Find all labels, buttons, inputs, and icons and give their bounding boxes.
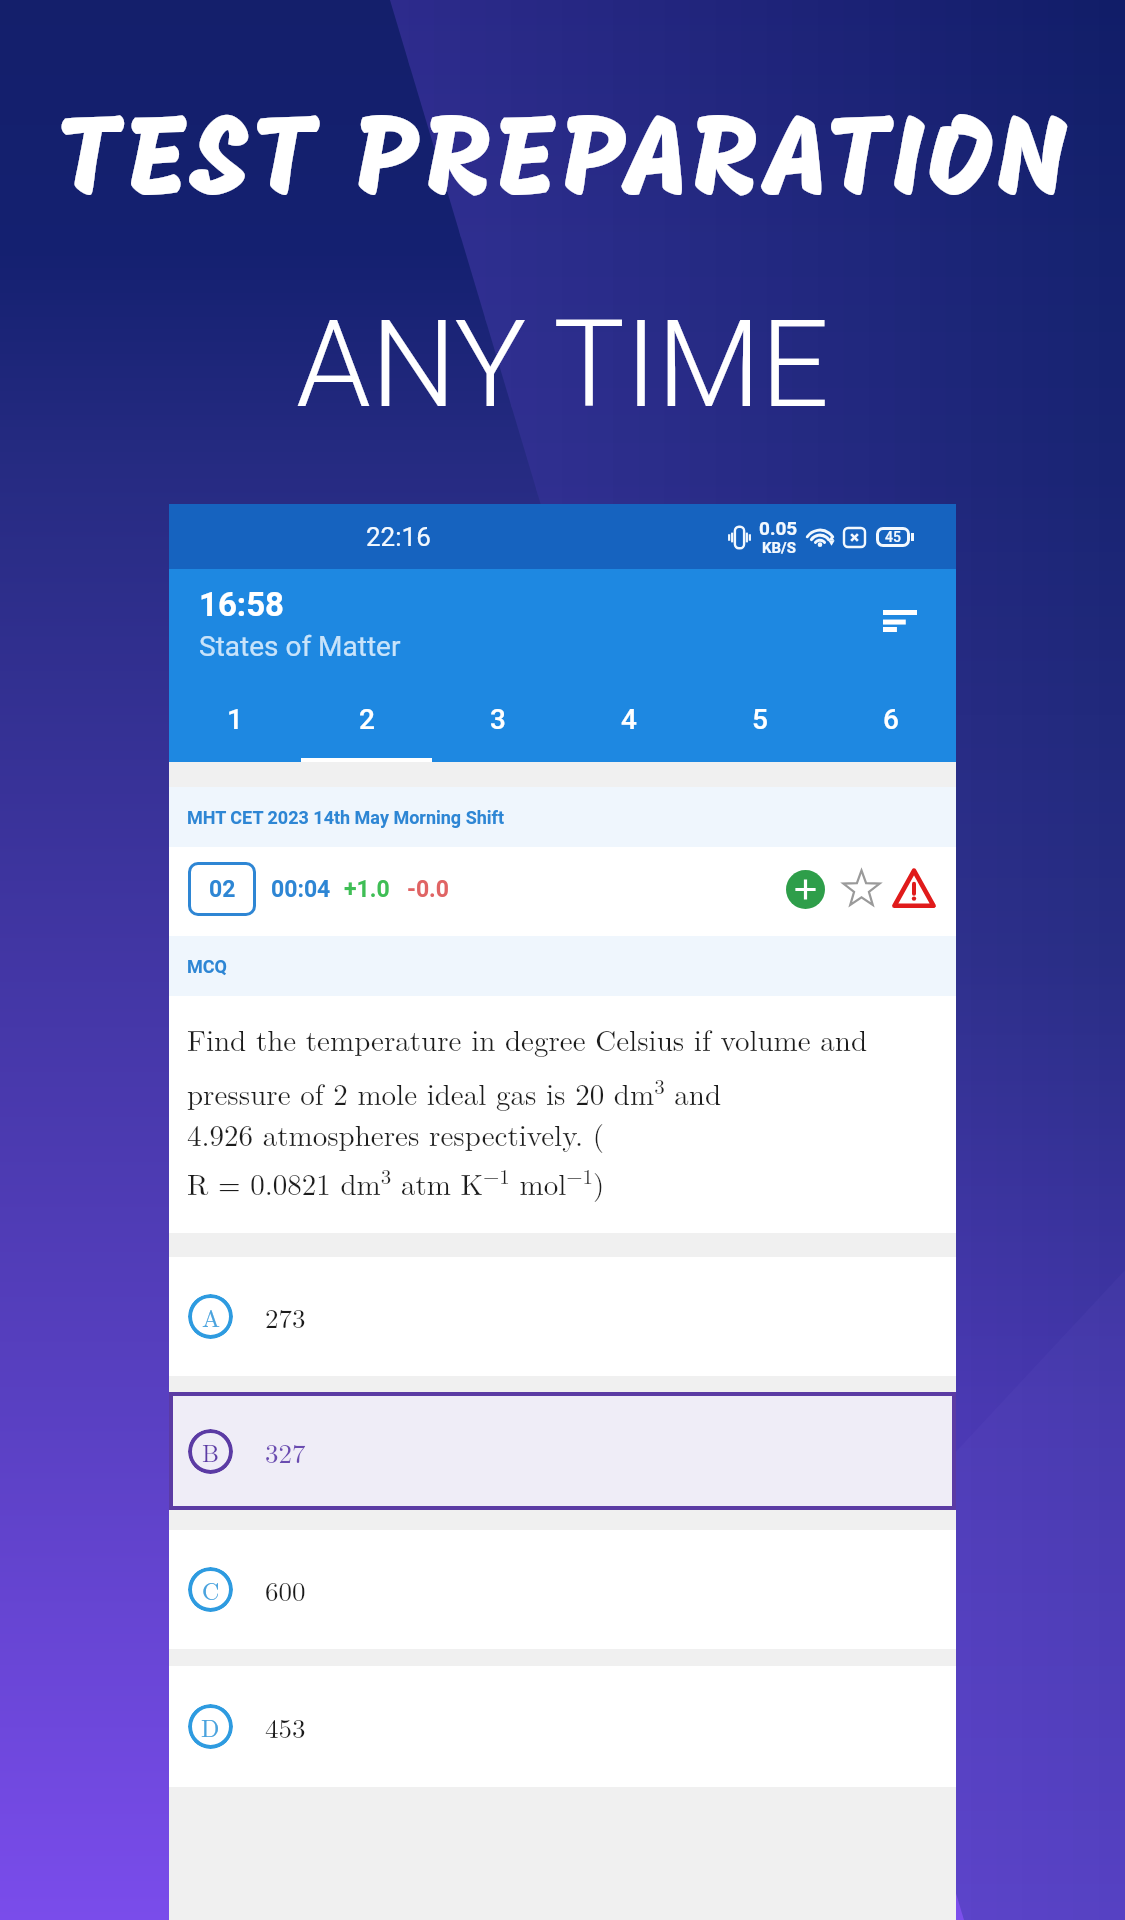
staticText: B	[202, 1435, 219, 1469]
staticText: 327	[265, 1433, 306, 1471]
staticText: 5	[752, 703, 768, 736]
staticText: -0.0	[407, 876, 450, 903]
staticText: A	[202, 1300, 220, 1334]
staticText: States of Matter	[199, 630, 401, 663]
staticText: 3	[490, 703, 506, 736]
staticText: 273	[265, 1298, 306, 1336]
staticText: MHT CET 2023 14th May Morning Shift	[187, 807, 505, 828]
button[interactable]: 5	[694, 689, 825, 762]
staticText: 0.05	[759, 517, 798, 539]
staticText: 600	[265, 1571, 306, 1609]
staticText: ANY TIME	[0, 295, 1125, 436]
button[interactable]: Bookmark	[838, 866, 884, 912]
staticText: 02	[209, 876, 236, 903]
staticText: 22:16	[366, 522, 431, 552]
button[interactable]: 02	[188, 862, 256, 916]
staticText: 00:04	[271, 876, 331, 903]
staticText: +1.0	[344, 876, 390, 903]
button[interactable]: D	[169, 1666, 956, 1787]
staticText: 45	[885, 529, 901, 545]
staticText: 4.926 atmospheres respectively. (	[187, 1113, 605, 1154]
staticText: TEST PREPARATION	[0, 109, 1125, 223]
button[interactable]: Report	[891, 866, 937, 912]
staticText: Find the temperature in degree Celsius i…	[187, 1018, 868, 1059]
button[interactable]: 3	[432, 689, 563, 762]
button[interactable]: 1	[169, 689, 301, 762]
staticText: 16:58	[199, 585, 285, 624]
staticText: 6	[883, 703, 899, 736]
button[interactable]: 4	[563, 689, 694, 762]
staticText: C	[202, 1573, 220, 1607]
button[interactable]: Sort	[876, 597, 924, 645]
staticText: R = 0.0821 dm3 atm K−1 mol−1)	[187, 1160, 605, 1203]
staticText: pressure of 2 mole ideal gas is 20 dm3 a…	[187, 1070, 722, 1113]
button[interactable]: A	[169, 1257, 956, 1376]
staticText: 4	[621, 703, 637, 736]
staticText: 2	[359, 703, 375, 736]
button[interactable]: Add	[786, 870, 825, 909]
staticText: MCQ	[187, 956, 227, 977]
button[interactable]: 2	[301, 689, 432, 762]
button[interactable]: C	[169, 1530, 956, 1649]
button[interactable]: B	[169, 1392, 956, 1510]
button[interactable]: MHT CET 2023 14th May Morning Shift	[169, 787, 956, 847]
staticText: 453	[265, 1708, 306, 1746]
button[interactable]: 6	[825, 689, 956, 762]
staticText: D	[201, 1710, 220, 1744]
staticText: 1	[227, 703, 243, 736]
staticText: KB/S	[762, 539, 796, 557]
